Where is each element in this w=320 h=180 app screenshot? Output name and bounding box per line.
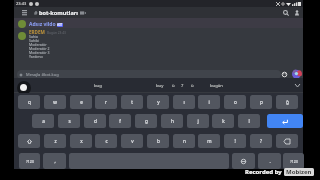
staticText: ERDEM [29,29,45,35]
button[interactable]: o [224,95,246,109]
button[interactable]: ? [250,134,272,148]
button[interactable]: 7 [181,83,184,89]
staticText: Moderatör 3 [29,50,50,54]
button[interactable]: p [250,95,272,109]
staticText: m [207,138,212,144]
button[interactable]: v [121,134,143,148]
staticText: 23:43 [16,1,27,6]
staticText: t [131,99,133,105]
button[interactable]: f [109,114,131,128]
button[interactable]: ü [172,83,175,89]
staticText: Recorded by [245,168,282,176]
staticText: BOT [57,23,63,27]
staticText: ! [234,138,236,144]
button[interactable]: a [32,114,54,128]
button[interactable]: Voice input [20,84,27,91]
button[interactable]: Emoji [280,70,288,78]
staticText: f [119,118,121,124]
button[interactable]: ?123 [283,153,304,169]
staticText: s [68,118,71,124]
button[interactable]: m [198,134,220,148]
button[interactable]: ?123 [19,153,40,169]
staticText: a [42,118,45,124]
button[interactable]: bug [94,83,102,89]
button[interactable]: e [70,95,92,109]
staticText: p [260,99,263,105]
button[interactable]: ğ [276,95,298,109]
staticText: d [94,118,97,124]
button[interactable]: i [198,95,220,109]
staticText: w [53,99,57,105]
button[interactable]: b [147,134,169,148]
button[interactable]: Search [280,7,291,18]
staticText: Bugün 23:43 [47,31,66,35]
button[interactable]: g [135,114,157,128]
staticText: y [157,99,160,105]
button[interactable]: t [121,95,143,109]
staticText: b [157,138,160,144]
button[interactable]: More suggestions [293,81,301,89]
button[interactable]: d [84,114,106,128]
button[interactable]: w [44,95,66,109]
button[interactable] [14,18,303,28]
button[interactable]: # [34,7,86,18]
button[interactable]: l [238,114,260,128]
staticText: Adsız vildo [29,21,56,28]
button[interactable]: j [187,114,209,128]
staticText: c [105,138,108,144]
staticText: n [183,138,186,144]
button[interactable]: Enter [267,114,303,128]
staticText: Yardımcı [29,54,44,58]
staticText: ?123 [290,159,298,164]
staticText: . [269,158,271,164]
button[interactable]: c [95,134,117,148]
button[interactable]: ı [173,95,195,109]
staticText: Sahip [29,34,39,38]
button[interactable]: Backspace [276,134,298,148]
staticText: k [222,118,225,124]
button[interactable]: buy [156,83,164,89]
staticText: h [171,118,174,124]
staticText: i [208,99,210,105]
staticText: , [54,158,56,164]
staticText: q [28,99,31,105]
button[interactable]: Shift [18,134,40,148]
staticText: j [197,118,199,124]
staticText: e [80,99,83,105]
staticText: # [34,9,38,16]
button[interactable]: n [173,134,195,148]
button[interactable]: bugün [210,83,223,89]
staticText: Mobizen [286,168,312,176]
staticText: z [54,138,57,144]
staticText: r [105,99,107,105]
button[interactable]: Switch language [232,153,255,169]
button[interactable]: k [212,114,234,128]
button[interactable]: Stickers [292,69,302,79]
button[interactable]: , [43,153,66,169]
button[interactable]: x [70,134,92,148]
button[interactable]: q [18,95,40,109]
button[interactable]: h [161,114,183,128]
staticText: g [145,118,148,124]
button[interactable]: z [44,134,66,148]
button[interactable]: . [258,153,281,169]
staticText: Mesajla #bot-kug [26,72,59,77]
staticText: ? [260,138,262,144]
button[interactable]: Mesajla #bot-kug [17,70,281,79]
staticText: bot-komutları [39,9,78,17]
button[interactable]: y [147,95,169,109]
staticText: Moderatör [29,42,47,46]
staticText: ?123 [26,159,34,164]
staticText: v [131,138,134,144]
staticText: Moderatör 2 [29,46,50,50]
button[interactable]: Open navigation menu [19,7,30,18]
button[interactable]: ü [191,83,194,89]
button[interactable]: s [58,114,80,128]
staticText: o [234,99,237,105]
staticText: x [80,138,83,144]
button[interactable]: r [95,95,117,109]
staticText: ğ [286,99,289,105]
button[interactable]: Members [291,7,302,18]
button[interactable]: ! [224,134,246,148]
